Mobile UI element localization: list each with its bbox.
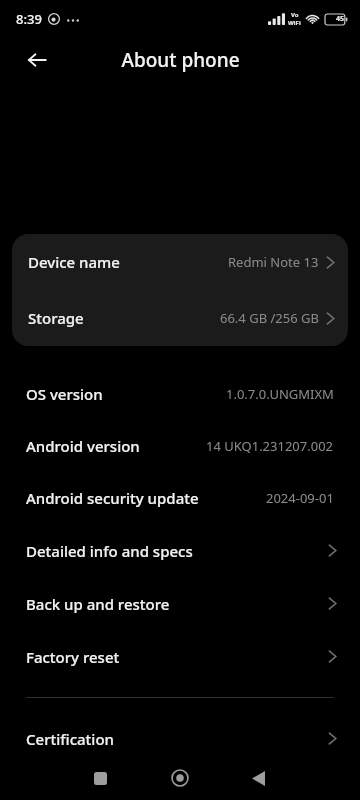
button[interactable]: OS version [0, 368, 360, 420]
button[interactable]: Storage [12, 290, 348, 346]
staticText: 45 [336, 14, 345, 24]
staticText: 1.0.7.0.UNGMIXM [226, 385, 334, 403]
button[interactable]: Detailed info and specs [0, 524, 360, 577]
button[interactable]: Recent apps [80, 758, 120, 798]
staticText: About phone [121, 47, 240, 73]
button[interactable]: Factory reset [0, 630, 360, 683]
staticText: 66.4 GB /256 GB [220, 309, 319, 327]
staticText: Android version [26, 436, 140, 456]
button[interactable]: Home [160, 758, 200, 798]
staticText: OS version [26, 384, 103, 404]
button[interactable]: Android version [0, 420, 360, 472]
staticText: Redmi Note 13 [228, 253, 319, 271]
staticText: WiFi [288, 19, 301, 27]
button[interactable]: Device name [12, 234, 348, 290]
button[interactable]: Back up and restore [0, 577, 360, 630]
staticText: 2024-09-01 [266, 489, 334, 507]
staticText: Android security update [26, 488, 199, 508]
staticText: Vo [291, 11, 299, 19]
button[interactable]: Back [238, 758, 278, 798]
staticText: Detailed info and specs [26, 541, 193, 561]
button[interactable]: Back [14, 38, 60, 82]
staticText: Factory reset [26, 647, 120, 667]
staticText: 14 UKQ1.231207.002 [206, 437, 334, 455]
staticText: Back up and restore [26, 594, 170, 614]
staticText: Certification [26, 729, 114, 749]
staticText: 8:39 [16, 10, 42, 28]
button[interactable]: Android security update [0, 472, 360, 524]
staticText: Device name [28, 252, 120, 272]
button[interactable]: Certification [0, 712, 360, 765]
staticText: Storage [28, 308, 84, 328]
